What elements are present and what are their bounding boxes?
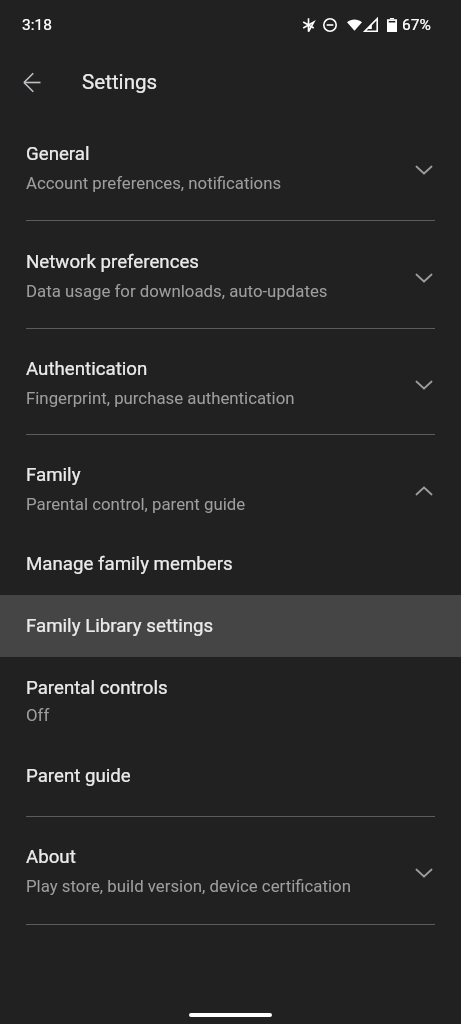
other: Expand	[414, 375, 434, 395]
staticText: Parental control, parent guide	[26, 494, 246, 514]
button[interactable]: About	[0, 818, 461, 924]
button[interactable]: General	[0, 115, 461, 221]
staticText: Family	[26, 464, 81, 486]
staticText: Play store, build version, device certif…	[26, 876, 351, 896]
other: Expand	[414, 268, 434, 288]
staticText: General	[26, 143, 90, 165]
staticText: Network preferences	[26, 251, 199, 273]
staticText: Off	[26, 705, 50, 725]
staticText: About	[26, 846, 76, 868]
staticText: Account preferences, notifications	[26, 173, 282, 193]
button[interactable]: Family	[0, 436, 461, 542]
button[interactable]: Parental controls	[0, 661, 461, 741]
staticText: Parent guide	[26, 765, 131, 787]
staticText: 67%	[402, 16, 431, 34]
staticText: Authentication	[26, 358, 148, 380]
staticText: Fingerprint, purchase authentication	[26, 388, 295, 408]
button[interactable]: Parent guide	[0, 745, 461, 807]
staticText: Settings	[82, 70, 158, 94]
button[interactable]: Network preferences	[0, 223, 461, 329]
button[interactable]: Back	[8, 58, 56, 106]
other: Expand	[414, 863, 434, 883]
staticText: Parental controls	[26, 677, 168, 699]
staticText: Data usage for downloads, auto-updates	[26, 281, 328, 301]
staticText: 3:18	[22, 16, 52, 34]
staticText: Family Library settings	[26, 615, 214, 637]
other: Expand	[414, 160, 434, 180]
button[interactable]: Authentication	[0, 330, 461, 436]
staticText: Manage family members	[26, 553, 233, 575]
other: Collapse	[414, 481, 434, 501]
button[interactable]: Family Library settings	[0, 595, 461, 657]
button[interactable]: Manage family members	[0, 533, 461, 595]
